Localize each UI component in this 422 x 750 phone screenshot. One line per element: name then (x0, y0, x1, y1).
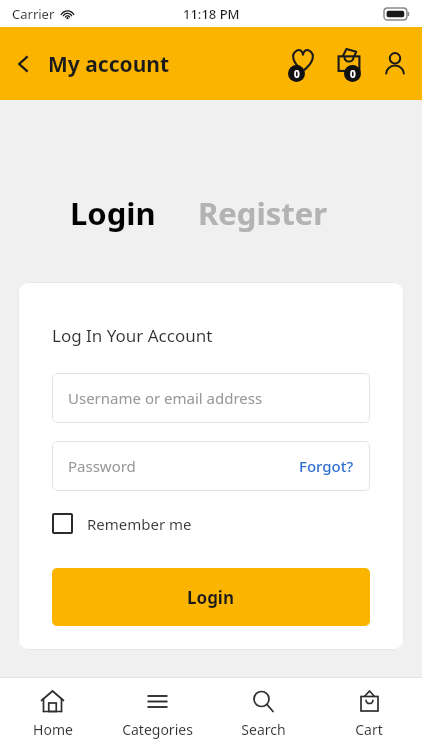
button[interactable]: Login (68, 188, 158, 238)
staticText: 0 (350, 67, 356, 81)
staticText: My account (48, 50, 170, 79)
button[interactable]: Register (196, 188, 330, 238)
staticText: Password (68, 456, 136, 476)
staticText: Login (187, 586, 235, 609)
staticText: Login (70, 192, 156, 234)
button[interactable]: Username or email address (52, 373, 370, 423)
staticText: Home (33, 720, 73, 739)
staticText: Search (241, 720, 286, 739)
staticText: Cart (355, 720, 383, 739)
staticText: 11:18 PM (183, 5, 240, 23)
staticText: Username or email address (68, 388, 263, 408)
staticText: Register (198, 192, 328, 234)
button[interactable]: Wishlist (280, 41, 326, 87)
button[interactable]: Remember me (52, 513, 192, 534)
button[interactable]: Cart (316, 678, 422, 750)
staticText: Log In Your Account (52, 324, 213, 347)
staticText: Forgot? (299, 456, 354, 476)
staticText: 0 (294, 67, 300, 81)
staticText: Categories (122, 720, 193, 739)
button[interactable]: Back (0, 40, 48, 88)
staticText: Carrier (12, 5, 55, 23)
button[interactable]: Login (52, 568, 370, 626)
button[interactable]: Home (0, 678, 105, 750)
button[interactable]: Password (52, 441, 370, 491)
button[interactable]: Forgot? (299, 456, 354, 476)
button[interactable]: Cart (326, 41, 372, 87)
button[interactable]: Account (372, 41, 418, 87)
staticText: Remember me (87, 514, 192, 534)
button[interactable]: Categories (105, 678, 210, 750)
button[interactable]: Search (210, 678, 316, 750)
